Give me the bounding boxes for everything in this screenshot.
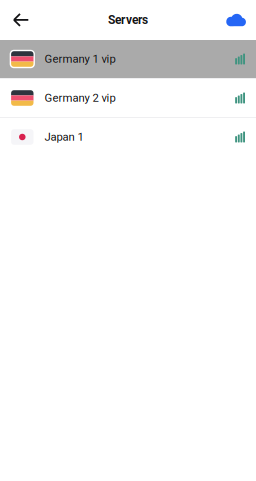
button[interactable]: Germany 1 vip — [0, 40, 256, 78]
button[interactable]: Cloud sync — [221, 5, 251, 35]
staticText: Servers — [108, 13, 148, 27]
button[interactable]: Back — [6, 5, 36, 35]
staticText: Japan 1 — [44, 130, 83, 144]
staticText: Germany 1 vip — [44, 52, 115, 66]
button[interactable]: Japan 1 — [0, 118, 256, 156]
staticText: Germany 2 vip — [44, 91, 115, 105]
button[interactable]: Germany 2 vip — [0, 79, 256, 117]
